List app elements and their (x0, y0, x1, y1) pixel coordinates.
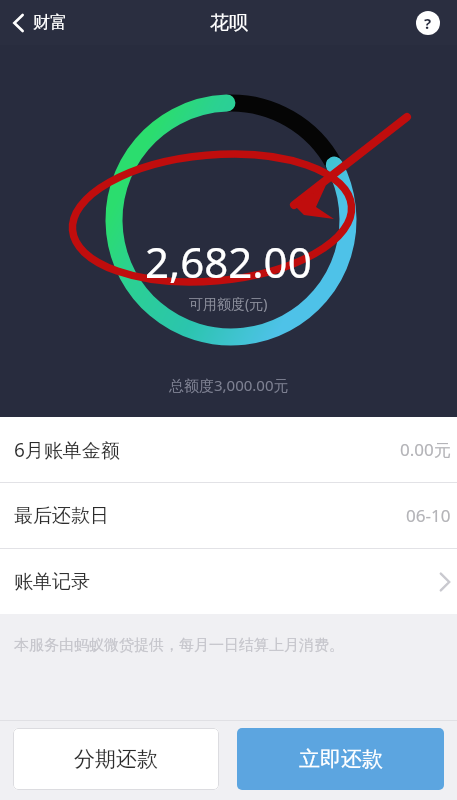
staticText: 本服务由蚂蚁微贷提供，每月一日结算上月消费。 (14, 636, 344, 655)
staticText: 总额度3,000.00元 (169, 375, 289, 395)
button[interactable]: 账单记录 (0, 549, 457, 614)
staticText: 2,682.00 (145, 233, 312, 290)
staticText: 财富 (33, 12, 67, 33)
staticText: 最后还款日 (14, 504, 109, 528)
button[interactable]: 财富 (0, 6, 79, 39)
staticText: 可用额度(元) (189, 294, 268, 313)
button[interactable]: 分期还款 (13, 728, 219, 790)
staticText: 0.00元 (400, 438, 451, 461)
staticText: 6月账单金额 (14, 437, 120, 463)
staticText: 花呗 (210, 11, 248, 35)
button[interactable]: 立即还款 (237, 728, 444, 790)
staticText: 账单记录 (14, 570, 90, 594)
staticText: 分期还款 (74, 746, 158, 772)
staticText: ? (424, 13, 432, 33)
button[interactable]: 6月账单金额 (0, 417, 457, 482)
staticText: 立即还款 (299, 746, 383, 772)
staticText: 06-10 (406, 504, 451, 527)
button[interactable]: Help (416, 11, 440, 35)
button[interactable]: 最后还款日 (0, 483, 457, 548)
